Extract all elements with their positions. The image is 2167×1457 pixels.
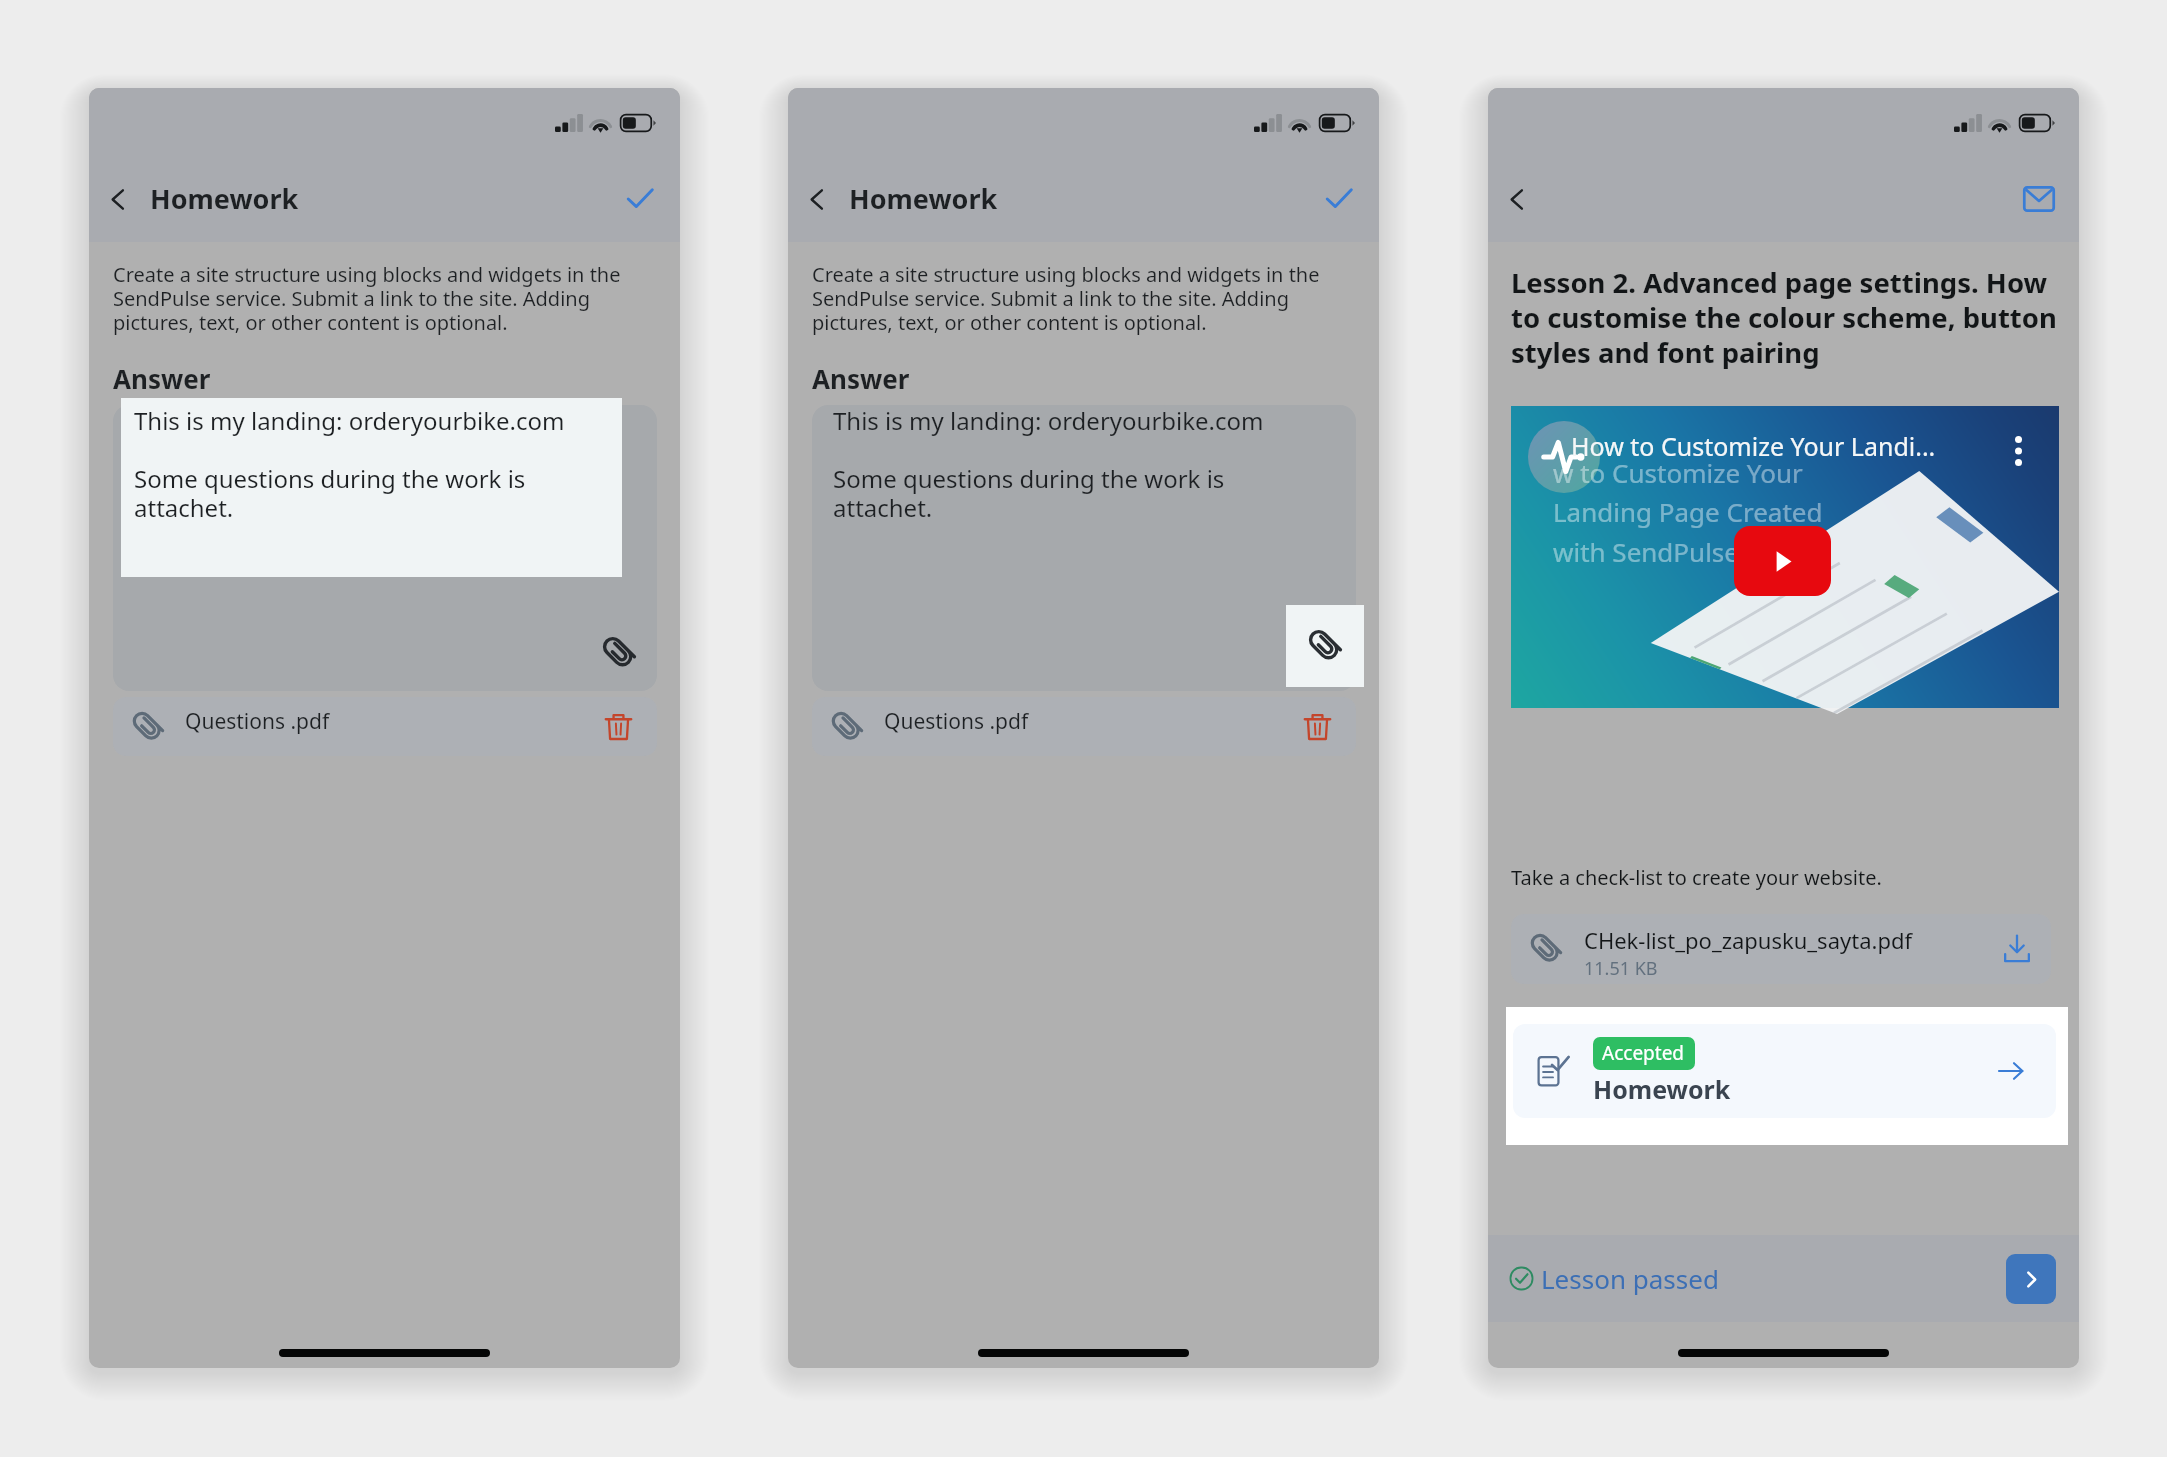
staticText: Some questions during the work is attach… <box>134 462 526 524</box>
button[interactable]: Next lesson <box>2006 1254 2056 1304</box>
staticText: This is my landing: orderyourbike.com <box>833 404 1264 437</box>
staticText: Lesson 2. Advanced page settings. How to… <box>1511 264 2057 372</box>
button[interactable]: Questions .pdf <box>113 697 657 756</box>
button[interactable]: Submit homework <box>616 175 664 223</box>
button[interactable]: Back <box>93 175 141 223</box>
staticText: Create a site structure using blocks and… <box>812 261 1320 335</box>
staticText: w to Customize Your Landing Page Created… <box>1553 455 1823 570</box>
staticText: Questions .pdf <box>884 707 1029 736</box>
button[interactable]: Submit homework <box>1315 175 1363 223</box>
staticText: 11.51 KB <box>1584 956 1658 981</box>
staticText: Homework <box>849 180 998 217</box>
button[interactable]: Attach file <box>1280 614 1356 691</box>
button[interactable]: Questions .pdf <box>812 697 1356 756</box>
staticText: How to Customize Your Landi... <box>1571 429 1936 463</box>
staticText: This is my landing: orderyourbike.com <box>134 404 565 437</box>
staticText: Accepted <box>1602 1040 1685 1066</box>
button[interactable]: Back <box>792 175 840 223</box>
staticText: Take a check-list to create your website… <box>1511 864 1882 891</box>
button[interactable]: Play video <box>1734 526 1831 596</box>
button[interactable]: Back <box>1492 175 1540 223</box>
staticText: Create a site structure using blocks and… <box>113 261 621 335</box>
staticText: CHek-list_po_zapusku_sayta.pdf <box>1584 925 1913 955</box>
button[interactable]: Accepted <box>1513 1024 2056 1118</box>
staticText: Questions .pdf <box>185 707 330 736</box>
staticText: Answer <box>113 361 211 396</box>
staticText: Some questions during the work is attach… <box>833 462 1225 524</box>
staticText: Answer <box>812 361 910 396</box>
staticText: Homework <box>150 180 299 217</box>
button[interactable]: Attach file <box>1286 605 1364 687</box>
staticText: Lesson passed <box>1541 1261 1719 1296</box>
button[interactable]: Messages <box>2015 175 2063 223</box>
button[interactable]: CHek-list_po_zapusku_sayta.pdf <box>1511 914 2051 984</box>
staticText: Homework <box>1593 1072 1731 1106</box>
button[interactable]: Attach file <box>581 614 657 691</box>
